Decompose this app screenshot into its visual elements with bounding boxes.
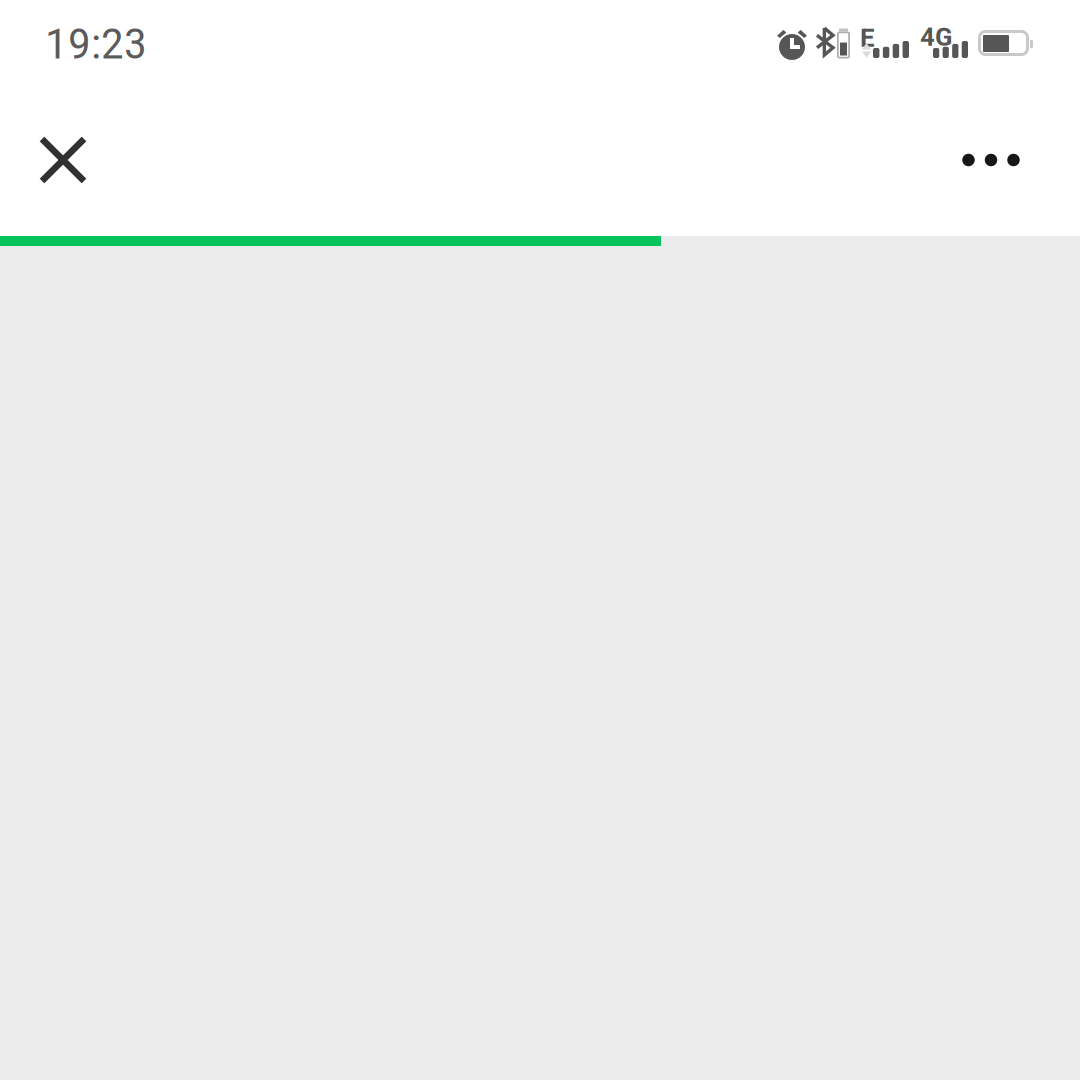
- button[interactable]: More options: [937, 106, 1045, 214]
- staticText: E: [860, 22, 875, 53]
- staticText: 4G: [920, 21, 952, 52]
- staticText: 19:23: [45, 19, 147, 69]
- button[interactable]: Close: [9, 106, 117, 214]
